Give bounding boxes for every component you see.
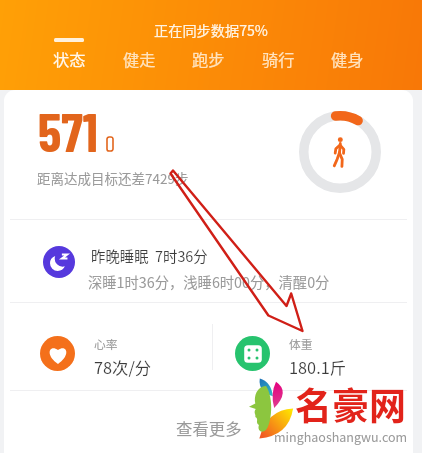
staticText: 名豪网 bbox=[295, 377, 406, 431]
staticText: 180.1斤 bbox=[289, 355, 347, 379]
staticText: 健走 bbox=[123, 47, 156, 70]
staticText: 心率 bbox=[94, 335, 118, 352]
staticText: 跑步 bbox=[192, 47, 225, 70]
staticText: 深睡1时36分，浅睡6时00分，清醒0分 bbox=[88, 271, 330, 292]
staticText: 骑行 bbox=[262, 47, 295, 70]
staticText: 查看更多 bbox=[176, 416, 242, 440]
button[interactable]: 健身 bbox=[321, 33, 373, 73]
button[interactable]: 状态 bbox=[43, 33, 95, 73]
staticText: 正在同步数据75% bbox=[154, 20, 268, 41]
button[interactable]: 查看更多 bbox=[4, 390, 413, 453]
button[interactable]: 跑步 bbox=[182, 33, 234, 73]
staticText: 健身 bbox=[331, 47, 364, 70]
button[interactable]: 健走 bbox=[113, 33, 165, 73]
staticText: 距离达成目标还差7429步 bbox=[37, 168, 189, 188]
staticText: 昨晚睡眠 7时36分 bbox=[91, 245, 208, 266]
staticText: 状态 bbox=[53, 47, 86, 70]
staticText: 571 bbox=[38, 99, 98, 163]
staticText: 体重 bbox=[289, 335, 313, 352]
button[interactable]: Weight bbox=[235, 303, 407, 390]
button[interactable]: Heart rate bbox=[40, 303, 212, 390]
button[interactable]: 骑行 bbox=[252, 33, 304, 73]
staticText: 78次/分 bbox=[94, 355, 152, 379]
button[interactable]: 昨晚睡眠 7时36分 bbox=[4, 220, 413, 302]
staticText: minghaoshangwu.com bbox=[274, 427, 408, 445]
